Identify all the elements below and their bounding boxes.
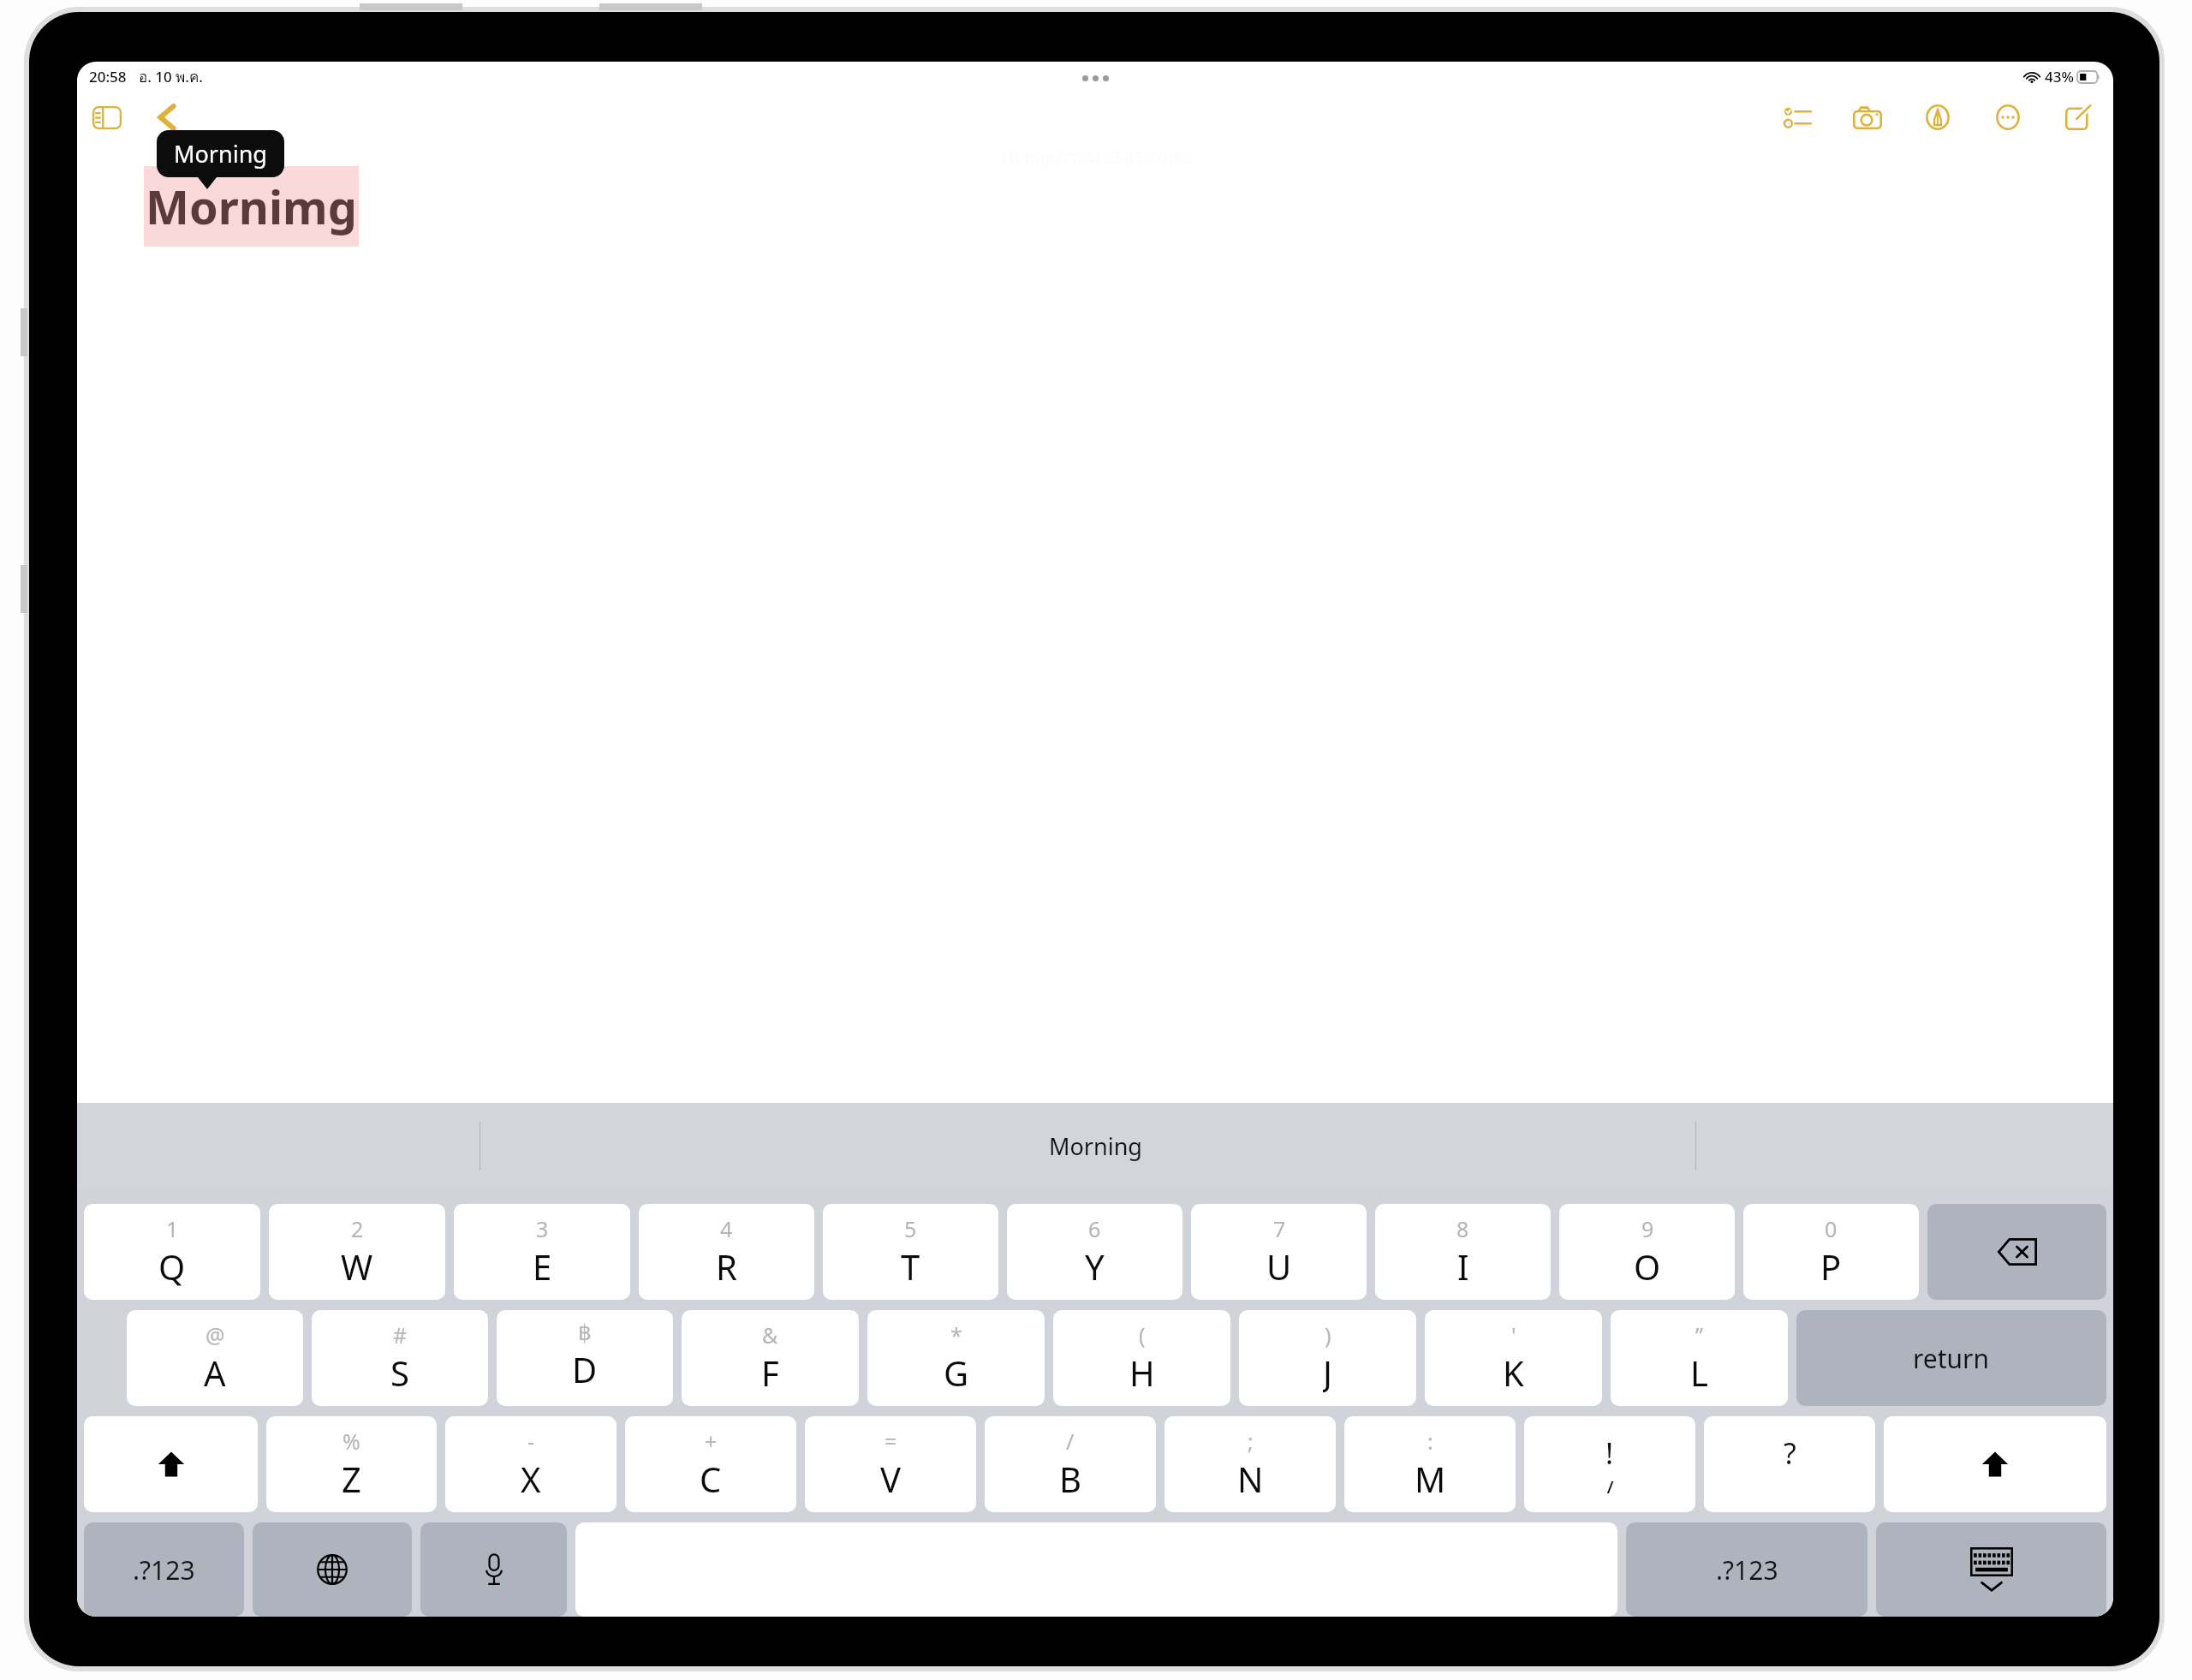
button[interactable]: 3 [454,1204,630,1300]
staticText: ; [1248,1427,1254,1456]
button[interactable]: Hide keyboard [1876,1522,2106,1617]
staticText: T [901,1243,920,1286]
staticText: K [1503,1349,1524,1392]
staticText: E [533,1243,552,1286]
button[interactable]: 0 [1743,1204,1919,1300]
staticText: M [1415,1456,1446,1498]
button[interactable] [575,1522,1617,1617]
staticText: # [393,1320,408,1349]
staticText: V [880,1456,901,1498]
button[interactable]: - [445,1416,616,1512]
staticText: 9 [1641,1214,1654,1243]
staticText: S [390,1349,409,1392]
button[interactable]: Backspace [1927,1204,2106,1300]
staticText: 3 [536,1214,549,1243]
staticText: G [944,1349,969,1392]
staticText: อ. 10 พ.ค. [139,65,203,88]
staticText: F [761,1349,779,1392]
staticText: U [1266,1243,1292,1286]
button[interactable]: Shift [84,1416,258,1512]
button[interactable]: ” [1611,1310,1788,1406]
staticText: Q [158,1243,186,1286]
button[interactable]: Shift [1884,1416,2106,1512]
button[interactable]: ? [1704,1416,1875,1512]
button[interactable]: 4 [639,1204,814,1300]
button[interactable]: ( [1053,1310,1230,1406]
staticText: 1 [166,1214,179,1243]
button[interactable]: : [1344,1416,1516,1512]
staticText: Mornimg [146,175,357,238]
staticText: B [1059,1456,1081,1498]
button[interactable]: Back [147,98,187,137]
staticText: : [1427,1427,1433,1456]
button[interactable]: + [625,1416,796,1512]
button[interactable]: ' [1425,1310,1602,1406]
staticText: ” [1695,1320,1703,1349]
button[interactable]: = [805,1416,976,1512]
button[interactable]: More [1988,98,2028,137]
button[interactable]: Morning [1015,1122,1176,1171]
button[interactable]: return [1796,1310,2106,1406]
staticText: A [204,1349,226,1392]
staticText: N [1237,1456,1264,1498]
button[interactable]: ! [1524,1416,1695,1512]
staticText: 7 [1273,1214,1286,1243]
staticText: I [1457,1243,1469,1286]
staticText: * [950,1320,962,1349]
button[interactable]: ฿ [497,1310,673,1406]
button[interactable]: .?123 [84,1522,244,1617]
button[interactable]: Next keyboard [253,1522,412,1617]
button[interactable]: ; [1164,1416,1336,1512]
button[interactable]: * [867,1310,1045,1406]
button[interactable]: Markup [1918,98,1957,137]
button[interactable]: Camera [1848,98,1887,137]
staticText: / [1066,1427,1075,1456]
button[interactable]: Morning [157,130,284,177]
button[interactable]: Sidebar [86,96,128,139]
staticText: Y [1085,1243,1105,1286]
button[interactable]: ) [1239,1310,1416,1406]
button[interactable]: 5 [823,1204,998,1300]
staticText: = [885,1427,897,1456]
staticText: 0 [1825,1214,1838,1243]
staticText: 2 [351,1214,364,1243]
staticText: .?123 [1716,1552,1778,1588]
button[interactable]: 9 [1559,1204,1735,1300]
staticText: ฿ [578,1320,592,1345]
staticText: ) [1325,1320,1331,1349]
button[interactable]: Checklist [1778,98,1817,137]
button[interactable]: # [312,1310,488,1406]
staticText: return [1913,1341,1990,1376]
button[interactable]: 7 [1191,1204,1367,1300]
button[interactable]: 6 [1007,1204,1182,1300]
button[interactable]: & [682,1310,859,1406]
button[interactable]: % [266,1416,437,1512]
staticText: Z [342,1456,361,1498]
staticText: .?123 [133,1552,195,1588]
button[interactable]: .?123 [1626,1522,1867,1617]
button[interactable]: 8 [1375,1204,1551,1300]
staticText: R [716,1243,737,1286]
staticText: X [521,1456,541,1498]
button[interactable]: 1 [84,1204,260,1300]
button[interactable]: Dictation [420,1522,567,1617]
staticText: Morning [174,138,267,170]
button[interactable]: Compose [2058,98,2098,137]
button[interactable]: @ [127,1310,303,1406]
staticText: 4 [720,1214,733,1243]
button[interactable]: 2 [269,1204,445,1300]
staticText: 20:58 [89,67,127,86]
staticText: J [1323,1349,1332,1392]
staticText: Morning [1049,1130,1142,1162]
staticText: ( [1139,1320,1146,1349]
staticText: 43% [2045,67,2074,86]
button[interactable]: / [985,1416,1156,1512]
staticText: W [341,1243,373,1286]
staticText: / [1605,1473,1614,1493]
staticText: 6 [1088,1214,1101,1243]
staticText: L [1690,1349,1708,1392]
staticText: ' [1511,1320,1516,1349]
staticText: @ [205,1320,225,1349]
staticText: 5 [904,1214,917,1243]
